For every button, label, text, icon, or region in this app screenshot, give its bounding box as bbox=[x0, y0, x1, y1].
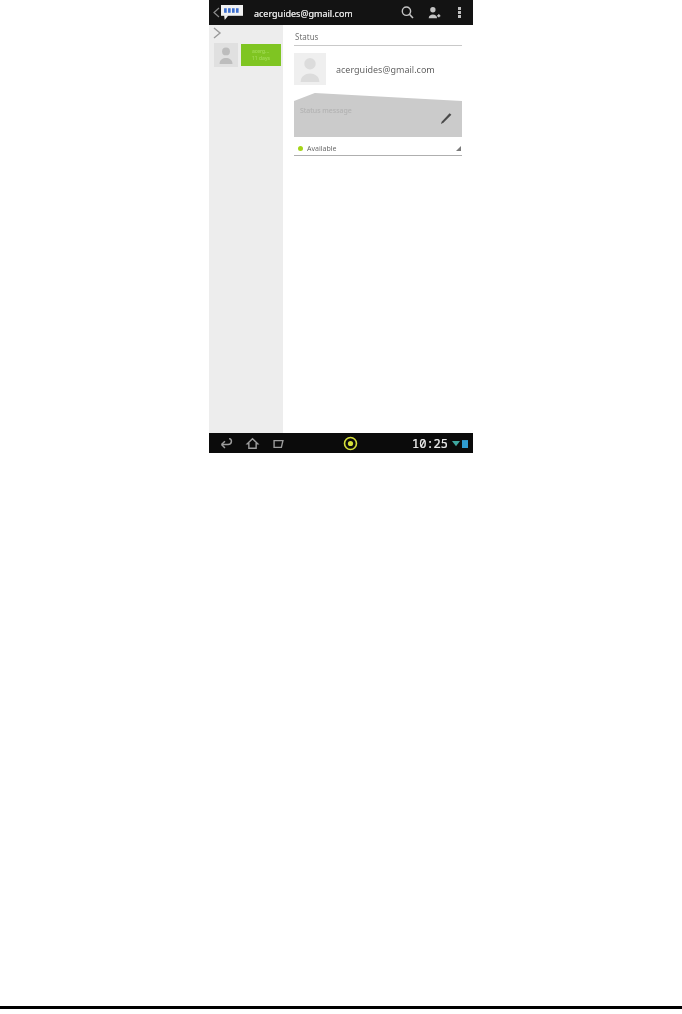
button[interactable]: Edit status message bbox=[438, 111, 454, 127]
button[interactable]: Available bbox=[294, 142, 462, 156]
staticText: acerg... bbox=[252, 48, 270, 55]
staticText: acerguides@gmail.com bbox=[254, 7, 353, 19]
staticText: 11 days bbox=[252, 55, 270, 62]
staticText: acerguides@gmail.com bbox=[336, 63, 435, 75]
button[interactable]: Add friend bbox=[420, 0, 448, 25]
staticText: Available bbox=[307, 144, 337, 154]
button[interactable]: Screenshot bbox=[339, 433, 361, 453]
staticText: 10:25 bbox=[412, 435, 449, 451]
button[interactable]: acerg... bbox=[209, 40, 283, 70]
button[interactable]: Recent apps bbox=[267, 433, 289, 453]
button[interactable]: Home bbox=[241, 433, 263, 453]
staticText: Status bbox=[295, 31, 319, 42]
button[interactable]: Expand list bbox=[209, 25, 283, 40]
staticText: Status message bbox=[300, 106, 352, 116]
button[interactable]: Back bbox=[215, 433, 237, 453]
button[interactable]: More options bbox=[448, 0, 470, 25]
button[interactable]: Profile photo bbox=[294, 53, 326, 85]
button[interactable]: Search bbox=[394, 0, 420, 25]
button[interactable]: Up bbox=[212, 5, 245, 20]
button[interactable]: 10:25 bbox=[412, 435, 473, 451]
